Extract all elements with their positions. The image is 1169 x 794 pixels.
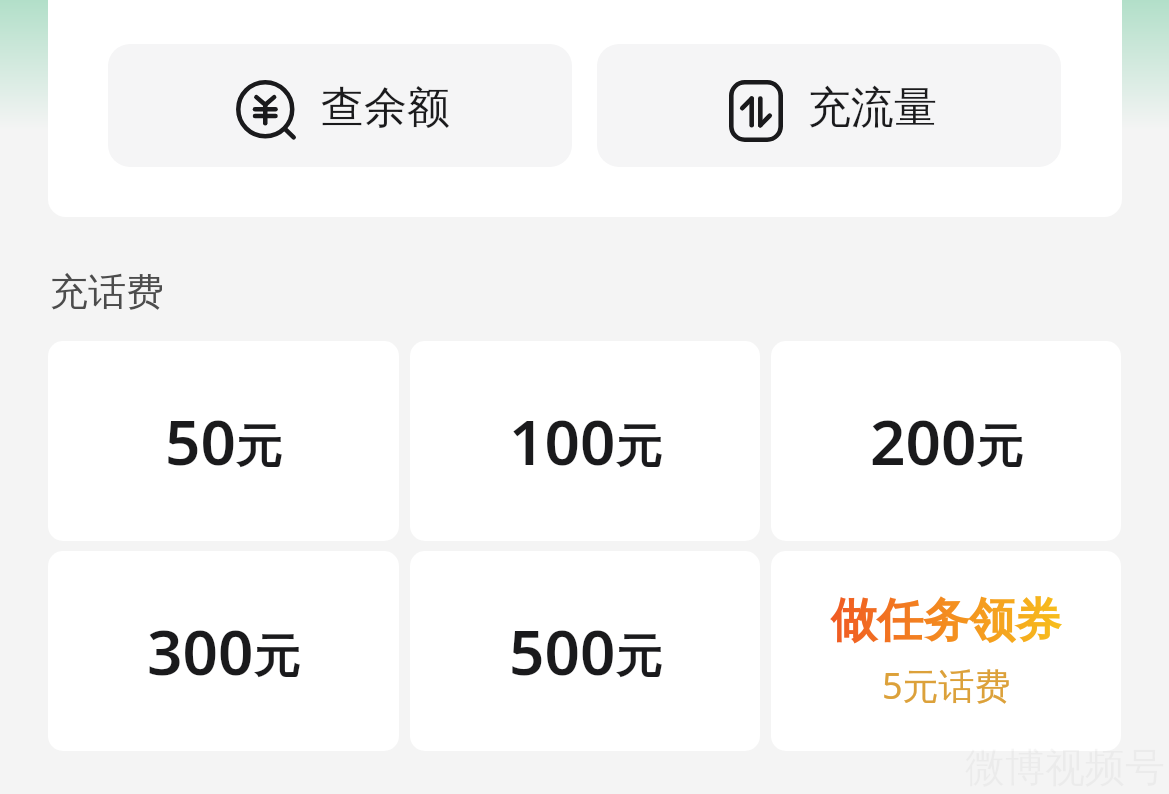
- staticText: 做任务领券: [831, 592, 1061, 650]
- staticText: 元: [254, 628, 300, 686]
- staticText: 查余额: [321, 81, 450, 135]
- staticText: 元: [977, 418, 1023, 476]
- button[interactable]: 做任务领券: [771, 551, 1121, 751]
- staticText: 50: [165, 399, 236, 483]
- staticText: 元: [236, 418, 282, 476]
- button[interactable]: 充流量: [597, 44, 1061, 167]
- staticText: 500: [509, 609, 616, 693]
- staticText: 充流量: [808, 81, 937, 135]
- other: 查余额: [238, 82, 296, 140]
- button[interactable]: 200: [771, 341, 1121, 541]
- staticText: 100: [509, 399, 616, 483]
- staticText: 微博视频号: [965, 742, 1165, 792]
- button[interactable]: 50: [48, 341, 399, 541]
- button[interactable]: 500: [410, 551, 760, 751]
- button[interactable]: 查余额: [108, 44, 572, 167]
- staticText: 元: [616, 418, 662, 476]
- staticText: 5元话费: [882, 661, 1011, 710]
- staticText: 充话费: [50, 268, 164, 316]
- staticText: 元: [616, 628, 662, 686]
- button[interactable]: 100: [410, 341, 760, 541]
- staticText: 300: [147, 609, 254, 693]
- staticText: 200: [870, 399, 977, 483]
- button[interactable]: 300: [48, 551, 399, 751]
- other: 充流量: [729, 80, 783, 142]
